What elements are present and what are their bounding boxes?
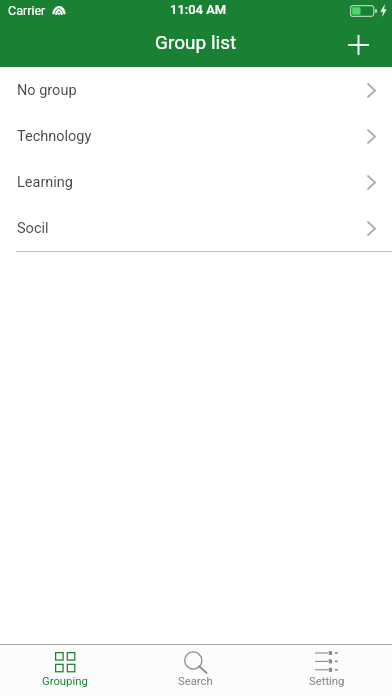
button[interactable]: Socil <box>0 205 392 251</box>
staticText: Socil <box>17 220 49 237</box>
button[interactable]: Setting <box>261 645 392 696</box>
staticText: Technology <box>17 128 92 145</box>
staticText: No group <box>17 82 77 99</box>
button[interactable]: Search <box>130 645 261 696</box>
button[interactable]: Add group <box>336 23 380 67</box>
button[interactable]: Technology <box>0 113 392 159</box>
staticText: Search <box>178 675 213 688</box>
staticText: Grouping <box>42 675 88 688</box>
staticText: Learning <box>17 174 73 191</box>
button[interactable]: Learning <box>0 159 392 205</box>
button[interactable]: Grouping <box>0 645 130 696</box>
staticText: Group list <box>155 31 237 53</box>
staticText: Carrier <box>8 3 46 18</box>
staticText: 11:04 AM <box>170 2 227 17</box>
staticText: Setting <box>309 675 345 688</box>
button[interactable]: No group <box>0 67 392 113</box>
